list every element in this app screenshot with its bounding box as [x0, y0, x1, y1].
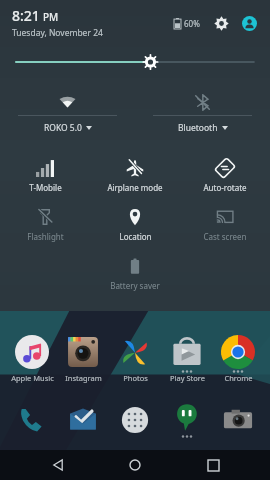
staticText: Chrome [224, 373, 253, 383]
button[interactable]: ROKO 5.0 [0, 89, 135, 139]
staticText: Play Store [170, 373, 205, 383]
button[interactable]: Recents [193, 450, 233, 480]
staticText: T-Mobile [29, 182, 62, 193]
button[interactable]: Auto-rotate [180, 153, 270, 202]
button[interactable]: Brightness [0, 51, 270, 73]
button[interactable]: Camera [214, 404, 262, 436]
staticText: Location [119, 231, 152, 242]
button[interactable]: User [238, 12, 260, 34]
button[interactable]: Instagram [59, 335, 107, 383]
button[interactable]: Location [90, 202, 180, 251]
button[interactable]: Bluetooth [135, 89, 270, 139]
staticText: Instagram [65, 373, 102, 383]
button[interactable]: Chrome [214, 335, 262, 383]
button[interactable]: Battery saver [90, 251, 180, 300]
button[interactable]: Hangouts [163, 401, 211, 438]
staticText: Cast screen [203, 231, 247, 242]
staticText: Flashlight [27, 231, 64, 242]
button[interactable]: Play Store [163, 335, 211, 383]
staticText: Apple Music [11, 373, 54, 383]
button[interactable]: Back [38, 450, 78, 480]
button[interactable]: Settings [210, 12, 232, 34]
button[interactable]: T-Mobile [0, 153, 90, 202]
staticText: PM [43, 10, 59, 24]
button[interactable]: Apps [111, 404, 159, 436]
staticText: 8:21 [12, 6, 40, 25]
button[interactable]: Cast screen [180, 202, 270, 251]
button[interactable]: Apple Music [8, 335, 56, 383]
button[interactable]: Flashlight [0, 202, 90, 251]
staticText: Bluetooth [178, 122, 218, 134]
button[interactable]: Home [115, 450, 155, 480]
staticText: Battery saver [110, 280, 160, 291]
staticText: ROKO 5.0 [44, 122, 82, 134]
staticText: Airplane mode [107, 182, 163, 193]
staticText: 60% [184, 18, 200, 29]
staticText: Auto-rotate [203, 182, 247, 193]
staticText: Photos [123, 373, 148, 383]
button[interactable]: Photos [111, 335, 159, 383]
button[interactable]: Phone [8, 404, 56, 436]
button[interactable]: Inbox [59, 404, 107, 436]
staticText: Tuesday, November 24 [12, 27, 103, 39]
button[interactable]: Airplane mode [90, 153, 180, 202]
